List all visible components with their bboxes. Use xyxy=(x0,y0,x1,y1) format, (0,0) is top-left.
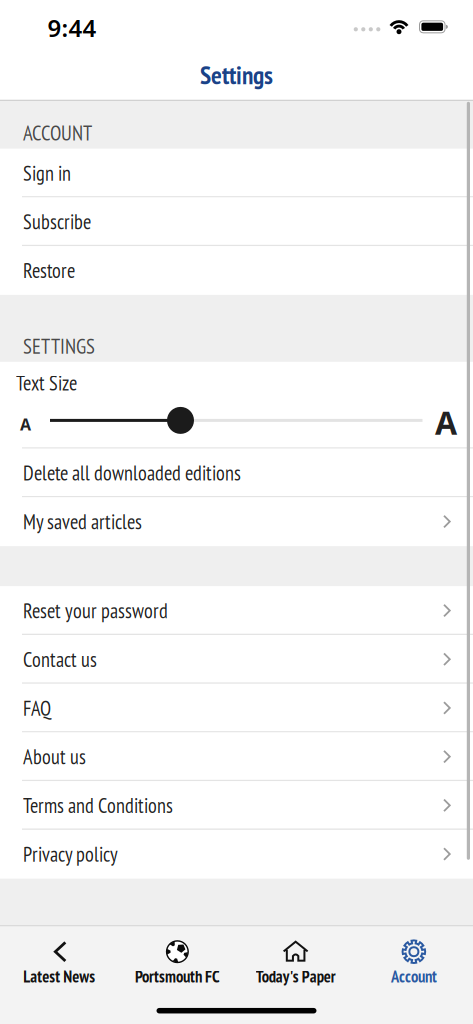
button[interactable]: Subscribe xyxy=(0,197,473,246)
staticText: Today's Paper xyxy=(256,966,336,987)
staticText: Subscribe xyxy=(23,209,91,235)
staticText: Privacy policy xyxy=(23,841,118,867)
staticText: FAQ xyxy=(23,695,51,721)
staticText: SETTINGS xyxy=(23,333,95,359)
staticText: ACCOUNT xyxy=(23,120,92,146)
button[interactable]: Latest News xyxy=(0,925,118,1003)
button[interactable]: Portsmouth FC xyxy=(118,925,236,1003)
button[interactable]: Account xyxy=(355,925,473,1003)
staticText: About us xyxy=(23,744,86,770)
button[interactable]: Contact us xyxy=(0,635,473,684)
button[interactable]: Text size slider xyxy=(167,407,194,434)
button[interactable]: Delete all downloaded editions xyxy=(0,449,473,497)
staticText: Portsmouth FC xyxy=(135,966,220,987)
staticText: My saved articles xyxy=(23,509,142,535)
staticText: 9:44 xyxy=(47,12,96,44)
staticText: A xyxy=(435,401,457,444)
staticText: Delete all downloaded editions xyxy=(23,460,241,486)
button[interactable]: About us xyxy=(0,732,473,781)
button[interactable]: Restore xyxy=(0,246,473,295)
staticText: Contact us xyxy=(23,646,97,672)
button[interactable]: Privacy policy xyxy=(0,830,473,879)
staticText: A xyxy=(20,414,31,435)
staticText: Terms and Conditions xyxy=(23,792,173,819)
button[interactable]: Terms and Conditions xyxy=(0,781,473,830)
staticText: Text Size xyxy=(16,370,77,396)
staticText: Reset your password xyxy=(23,598,168,624)
button[interactable]: My saved articles xyxy=(0,497,473,546)
staticText: Sign in xyxy=(23,160,71,186)
staticText: Account xyxy=(391,966,437,987)
button[interactable]: Reset your password xyxy=(0,586,473,635)
staticText: Restore xyxy=(23,257,75,284)
button[interactable]: Today's Paper xyxy=(236,925,355,1003)
staticText: Latest News xyxy=(23,966,95,987)
button[interactable]: Sign in xyxy=(0,149,473,197)
staticText: Settings xyxy=(200,58,273,91)
button[interactable]: FAQ xyxy=(0,684,473,732)
